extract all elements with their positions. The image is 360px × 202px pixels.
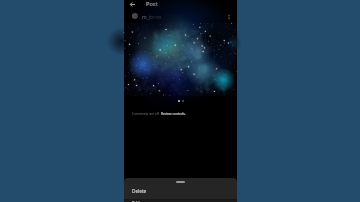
staticText: Edit [132, 200, 141, 202]
staticText: Review controls. [161, 112, 186, 116]
button[interactable]: Edit [124, 200, 237, 202]
staticText: Comments are off. [132, 112, 161, 116]
staticText: Post [146, 0, 158, 8]
button[interactable]: Back [128, 0, 137, 9]
button[interactable]: More options [224, 12, 233, 21]
button[interactable]: Delete [124, 186, 237, 196]
staticText: m_jones [142, 14, 162, 21]
staticText: Delete [132, 188, 147, 194]
